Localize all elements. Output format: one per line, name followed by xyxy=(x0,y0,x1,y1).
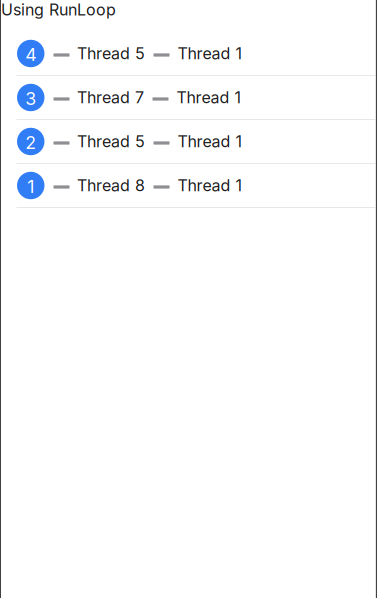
staticText: Thread 5 xyxy=(77,132,145,151)
staticText: 4 xyxy=(25,44,36,65)
staticText: Using RunLoop xyxy=(1,0,116,19)
staticText: Thread 1 xyxy=(177,44,242,63)
staticText: Thread 8 xyxy=(77,176,145,195)
staticText: Thread 1 xyxy=(176,88,241,107)
staticText: 1 xyxy=(27,176,34,197)
staticText: Thread 1 xyxy=(177,176,242,195)
button[interactable]: 4 xyxy=(0,32,377,75)
staticText: 2 xyxy=(25,132,36,153)
button[interactable]: 3 xyxy=(0,76,377,119)
staticText: 3 xyxy=(25,88,36,109)
staticText: Thread 5 xyxy=(77,44,145,63)
staticText: Thread 1 xyxy=(177,132,242,151)
staticText: Thread 7 xyxy=(77,88,144,107)
button[interactable]: 1 xyxy=(0,164,377,207)
button[interactable]: 2 xyxy=(0,120,377,163)
